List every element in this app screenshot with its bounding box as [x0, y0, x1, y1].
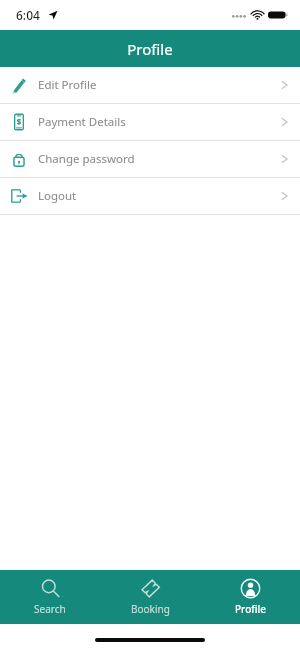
button[interactable]: Edit Profile: [0, 67, 300, 103]
button[interactable]: Change password: [0, 141, 300, 177]
staticText: Profile: [127, 39, 173, 59]
staticText: Search: [34, 602, 66, 616]
staticText: Payment Details: [38, 114, 126, 130]
staticText: 6:04: [16, 7, 40, 23]
staticText: Booking: [131, 602, 170, 616]
staticText: Change password: [38, 151, 135, 167]
staticText: Logout: [38, 188, 77, 204]
button[interactable]: Booking: [100, 570, 200, 624]
button[interactable]: Logout: [0, 178, 300, 214]
button[interactable]: Payment Details: [0, 104, 300, 140]
staticText: Profile: [235, 602, 266, 616]
staticText: Edit Profile: [38, 77, 97, 93]
button[interactable]: Search: [0, 570, 100, 624]
button[interactable]: Profile: [200, 570, 300, 624]
